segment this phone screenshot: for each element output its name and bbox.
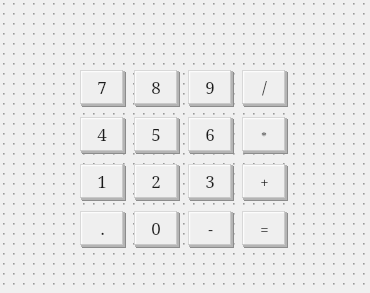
button[interactable]: Minus (188, 211, 234, 248)
button[interactable]: Two (134, 164, 180, 201)
staticText: + (260, 172, 269, 192)
button[interactable]: Multiply (242, 117, 288, 154)
staticText: 0 (151, 217, 161, 240)
button[interactable]: Six (188, 117, 234, 154)
staticText: 5 (151, 123, 161, 146)
staticText: 7 (97, 76, 107, 99)
button[interactable]: Equals (242, 211, 288, 248)
staticText: 3 (205, 170, 215, 193)
button[interactable]: Zero (134, 211, 180, 248)
staticText: 6 (205, 123, 215, 146)
button[interactable]: Nine (188, 70, 234, 107)
staticText: 8 (151, 76, 161, 99)
staticText: 1 (97, 170, 107, 193)
staticText: = (260, 219, 269, 239)
button[interactable]: Three (188, 164, 234, 201)
staticText: - (208, 219, 213, 239)
button[interactable]: Eight (134, 70, 180, 107)
staticText: 9 (205, 76, 215, 99)
staticText: * (261, 128, 267, 143)
staticText: 4 (97, 123, 107, 146)
staticText: . (100, 217, 105, 240)
button[interactable]: Plus (242, 164, 288, 201)
button[interactable]: Decimal point (80, 211, 126, 248)
button[interactable]: Seven (80, 70, 126, 107)
button[interactable]: Four (80, 117, 126, 154)
staticText: 2 (151, 170, 161, 193)
staticText: / (262, 76, 267, 99)
button[interactable]: Divide (242, 70, 288, 107)
button[interactable]: Five (134, 117, 180, 154)
button[interactable]: One (80, 164, 126, 201)
